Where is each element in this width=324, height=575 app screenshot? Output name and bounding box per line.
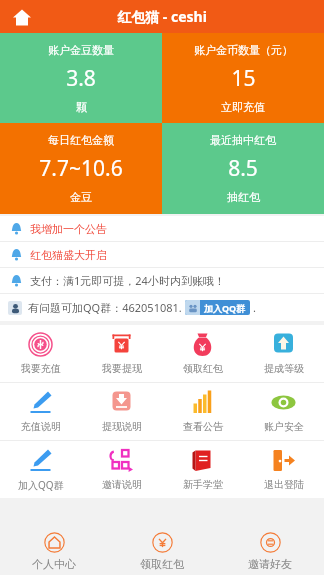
staticText: 领取红包 bbox=[140, 557, 184, 571]
button[interactable]: 充值说明 bbox=[0, 383, 81, 440]
staticText: 邀请好友 bbox=[248, 557, 292, 571]
button[interactable]: 退出登陆 bbox=[243, 441, 324, 498]
staticText: 领取红包 bbox=[183, 362, 223, 375]
button[interactable]: 邀请好友 bbox=[216, 527, 324, 575]
staticText: 立即充值 bbox=[221, 100, 265, 114]
button[interactable]: 个人中心 bbox=[0, 527, 108, 575]
staticText: 我要充值 bbox=[21, 362, 61, 375]
staticText: 我要提现 bbox=[102, 362, 142, 375]
button[interactable]: 账户金豆数量 bbox=[0, 33, 162, 123]
staticText: 3.8 bbox=[66, 64, 96, 93]
button[interactable]: 账户安全 bbox=[243, 383, 324, 440]
staticText: 新手学堂 bbox=[183, 478, 223, 491]
staticText: 加入QQ群 bbox=[204, 302, 246, 314]
staticText: 账户金币数量（元） bbox=[194, 43, 293, 57]
staticText: 15 bbox=[231, 64, 256, 93]
staticText: 每日红包金额 bbox=[48, 133, 114, 147]
button[interactable]: 有问题可加QQ群：462051081. bbox=[0, 294, 324, 321]
button[interactable]: 最近抽中红包 bbox=[162, 123, 324, 214]
button[interactable]: 红包猫盛大开启 bbox=[0, 242, 324, 267]
staticText: 最近抽中红包 bbox=[210, 133, 276, 147]
staticText: 支付：满1元即可提，24小时内到账哦！ bbox=[30, 273, 225, 288]
staticText: 账户金豆数量 bbox=[48, 43, 114, 57]
staticText: 颗 bbox=[76, 100, 87, 114]
button[interactable]: Home bbox=[8, 3, 36, 31]
button[interactable]: 我增加一个公告 bbox=[0, 216, 324, 241]
button[interactable]: 加入QQ群 bbox=[0, 441, 81, 498]
staticText: 8.5 bbox=[228, 154, 258, 183]
staticText: 个人中心 bbox=[32, 557, 76, 571]
staticText: 退出登陆 bbox=[264, 478, 304, 491]
button[interactable]: 账户金币数量（元） bbox=[162, 33, 324, 123]
staticText: 提现说明 bbox=[102, 420, 142, 433]
staticText: 充值说明 bbox=[21, 420, 61, 433]
staticText: . bbox=[253, 300, 256, 315]
button[interactable]: 领取红包 bbox=[162, 325, 243, 382]
button[interactable]: 查看公告 bbox=[162, 383, 243, 440]
button[interactable]: 我要提现 bbox=[81, 325, 162, 382]
staticText: 金豆 bbox=[70, 190, 92, 204]
button[interactable]: 我要充值 bbox=[0, 325, 81, 382]
staticText: 红包猫 - ceshi bbox=[117, 7, 207, 26]
staticText: 我增加一个公告 bbox=[30, 222, 107, 236]
staticText: 加入QQ群 bbox=[18, 478, 64, 492]
staticText: 有问题可加QQ群：462051081. bbox=[28, 300, 182, 315]
staticText: 7.7~10.6 bbox=[39, 154, 123, 183]
staticText: 提成等级 bbox=[264, 362, 304, 375]
button[interactable]: 加入QQ群 bbox=[185, 300, 250, 315]
staticText: 查看公告 bbox=[183, 420, 223, 433]
button[interactable]: 邀请说明 bbox=[81, 441, 162, 498]
button[interactable]: 领取红包 bbox=[108, 527, 216, 575]
staticText: 抽红包 bbox=[227, 190, 260, 204]
button[interactable]: 每日红包金额 bbox=[0, 123, 162, 214]
button[interactable]: 提成等级 bbox=[243, 325, 324, 382]
button[interactable]: 提现说明 bbox=[81, 383, 162, 440]
button[interactable]: 新手学堂 bbox=[162, 441, 243, 498]
staticText: 账户安全 bbox=[264, 420, 304, 433]
button[interactable]: 支付：满1元即可提，24小时内到账哦！ bbox=[0, 268, 324, 293]
staticText: 红包猫盛大开启 bbox=[30, 248, 107, 262]
staticText: 邀请说明 bbox=[102, 478, 142, 491]
